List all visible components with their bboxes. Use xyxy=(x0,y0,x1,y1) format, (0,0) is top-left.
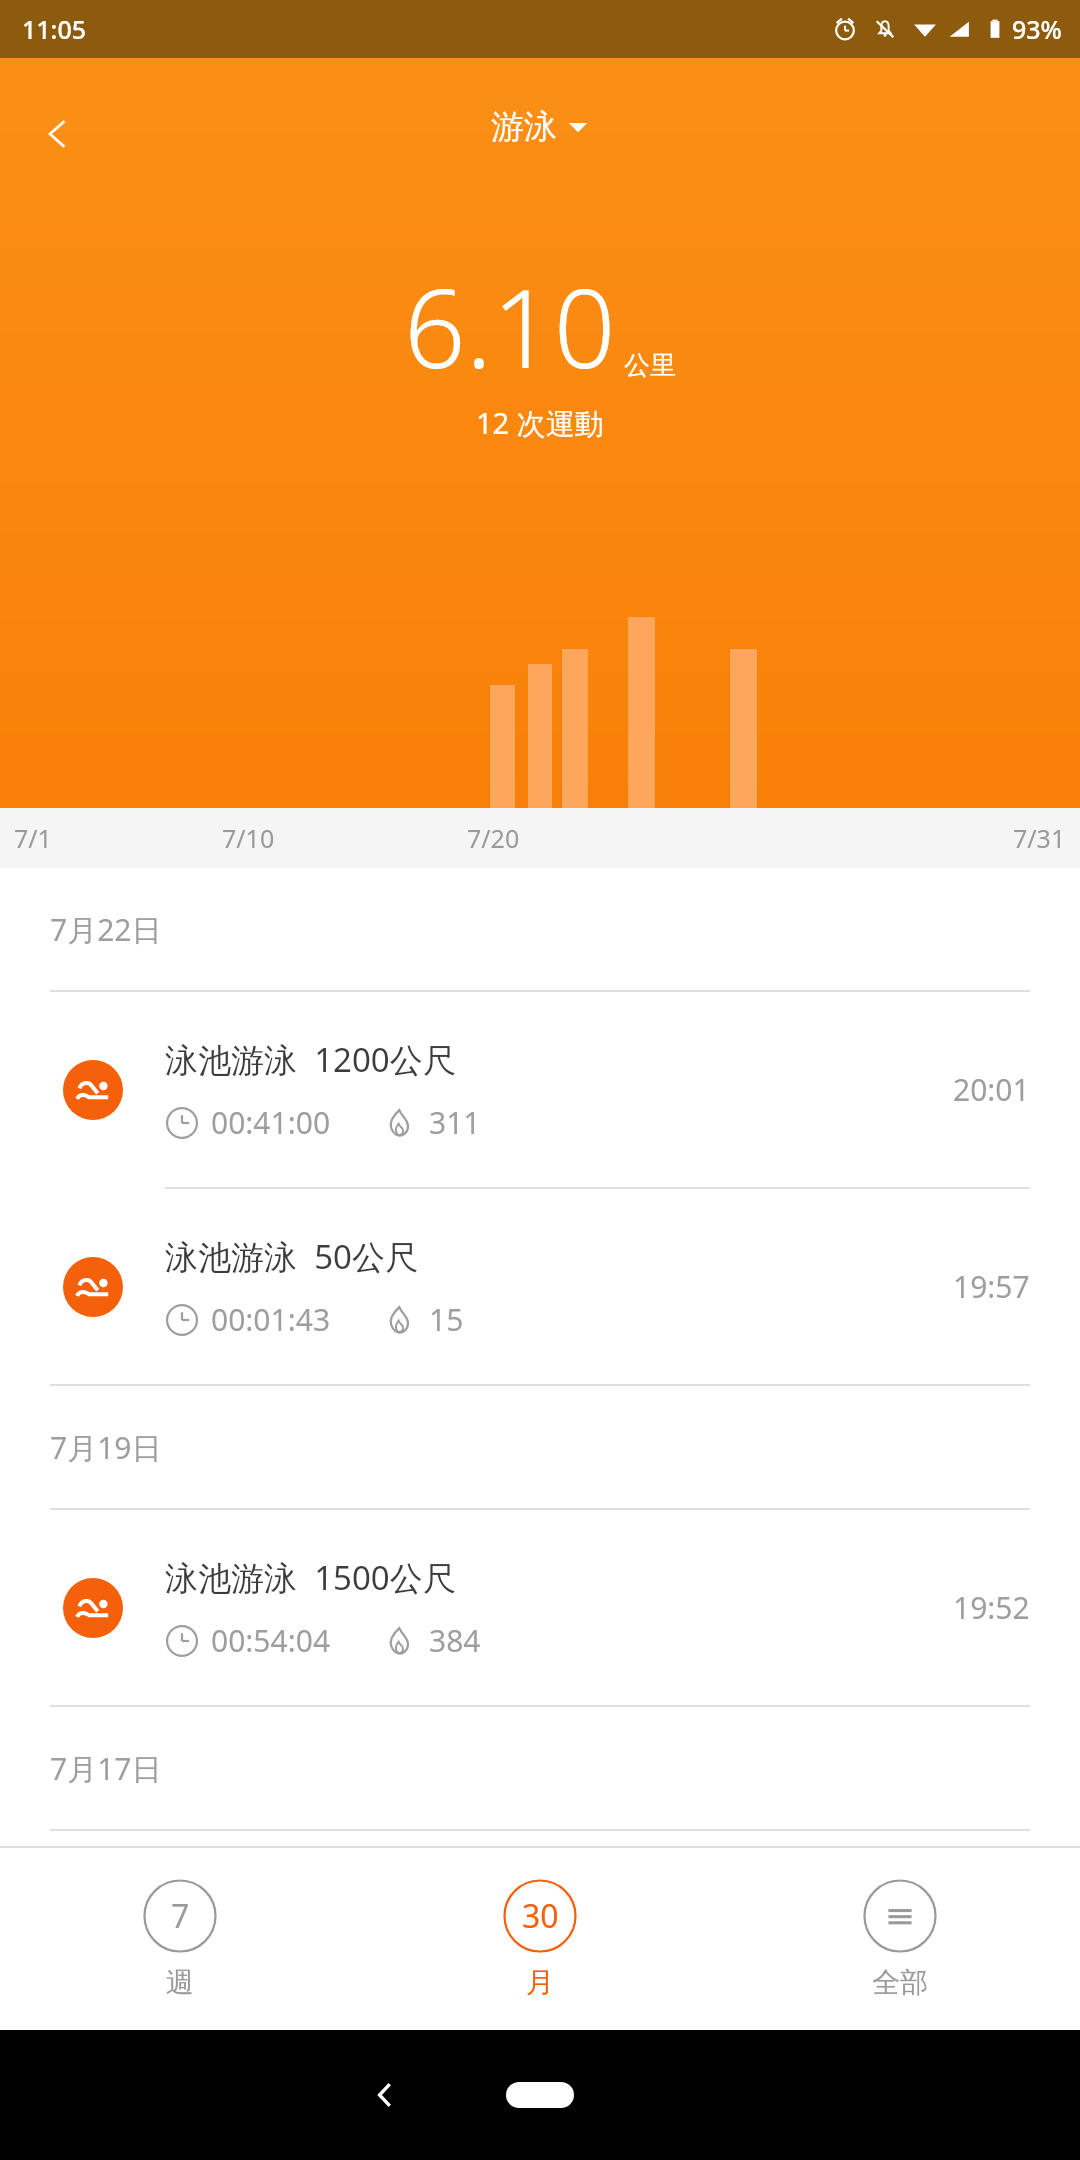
staticText: 11:05 xyxy=(22,12,87,46)
button[interactable]: 泳池游泳 1500公尺 xyxy=(0,1510,1080,1705)
staticText: 游泳 xyxy=(491,106,557,148)
staticText: 7/10 xyxy=(222,821,275,855)
staticText: 7月22日 xyxy=(50,909,162,950)
staticText: 311 xyxy=(429,1102,481,1143)
staticText: 30 xyxy=(522,1894,559,1938)
button[interactable]: Back xyxy=(20,96,96,172)
staticText: 00:01:43 xyxy=(211,1299,331,1340)
staticText: 7/1 xyxy=(14,821,52,855)
staticText: 384 xyxy=(429,1620,481,1661)
staticText: 泳池游泳 1200公尺 xyxy=(165,1037,456,1082)
staticText: 7月17日 xyxy=(50,1748,162,1789)
staticText: 月 xyxy=(526,1965,554,2000)
staticText: 泳池游泳 50公尺 xyxy=(165,1234,418,1279)
staticText: 全部 xyxy=(872,1965,928,2000)
staticText: 7月19日 xyxy=(50,1427,162,1468)
staticText: 泳池游泳 1500公尺 xyxy=(165,1555,456,1600)
staticText: 00:41:00 xyxy=(211,1102,331,1143)
staticText: 19:57 xyxy=(953,1266,1030,1307)
staticText: 93% xyxy=(1012,12,1062,46)
staticText: 20:01 xyxy=(953,1069,1030,1110)
button[interactable]: Home xyxy=(506,2082,574,2108)
staticText: 週 xyxy=(166,1965,194,2000)
staticText: 7 xyxy=(171,1894,190,1938)
staticText: 7/31 xyxy=(1013,821,1066,855)
button[interactable]: 游泳 xyxy=(491,106,589,148)
staticText: 公里 xyxy=(624,349,676,382)
staticText: 12 次運動 xyxy=(476,403,604,443)
button[interactable]: Week xyxy=(0,1848,360,2030)
button[interactable]: Month xyxy=(360,1848,720,2030)
button[interactable]: 泳池游泳 50公尺 xyxy=(0,1189,1080,1384)
button[interactable]: 泳池游泳 1200公尺 xyxy=(0,992,1080,1187)
staticText: 00:54:04 xyxy=(211,1620,331,1661)
staticText: 19:52 xyxy=(953,1587,1030,1628)
button[interactable]: All xyxy=(720,1848,1080,2030)
button[interactable]: Back xyxy=(350,2060,420,2130)
staticText: 6.10 xyxy=(404,253,616,400)
staticText: 15 xyxy=(429,1299,464,1340)
staticText: 7/20 xyxy=(467,821,520,855)
